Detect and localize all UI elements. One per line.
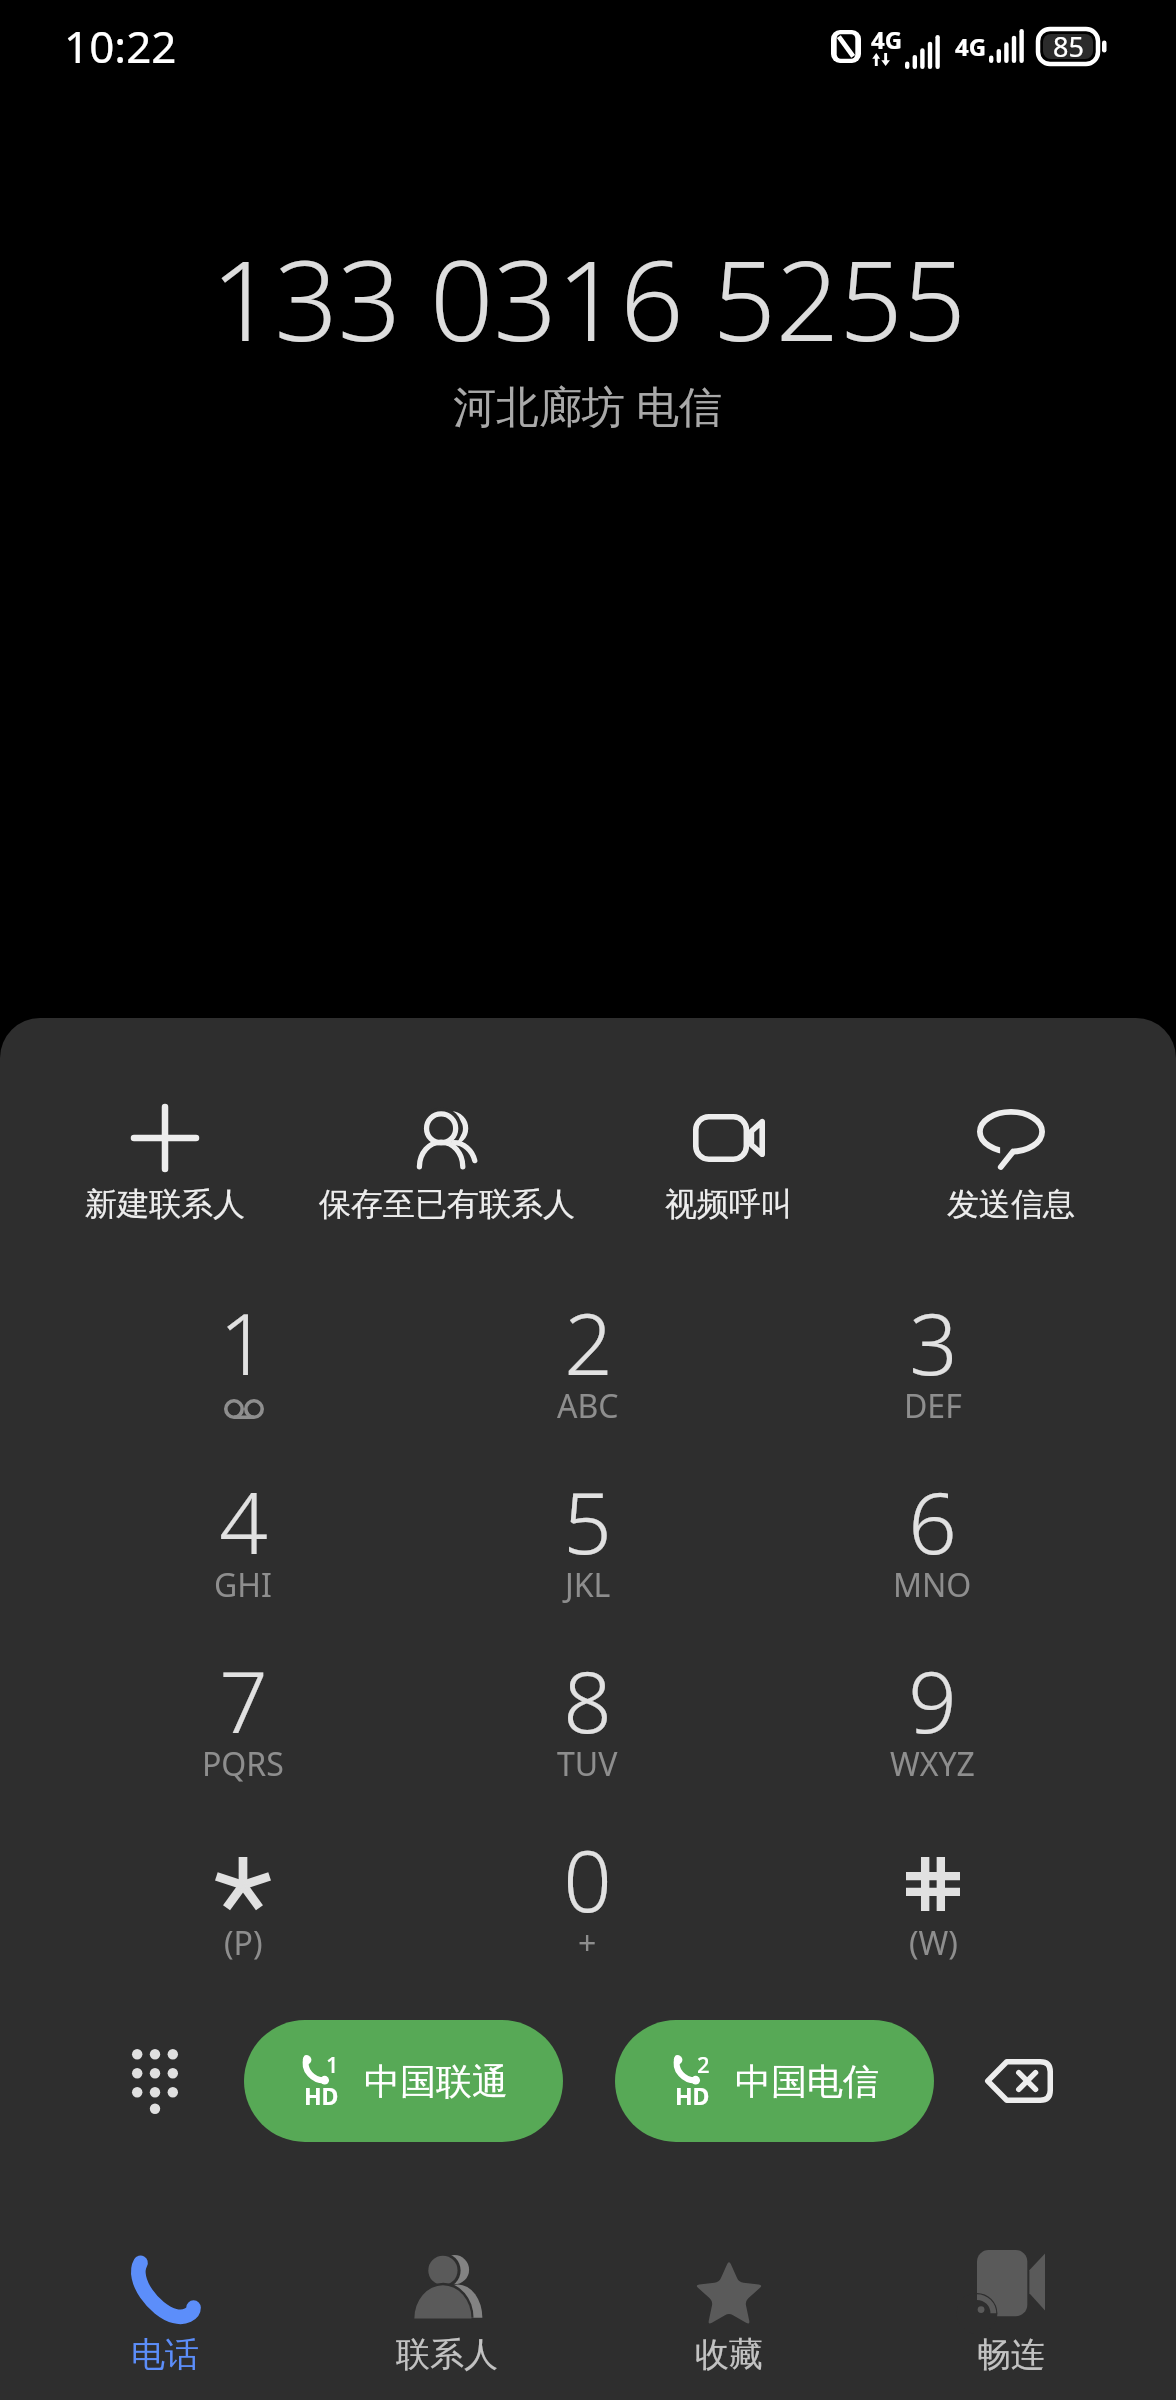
- staticText: 4G: [871, 23, 903, 56]
- staticText: 保存至已有联系人: [319, 1184, 575, 1224]
- button[interactable]: 新建联系人: [24, 1098, 306, 1248]
- staticText: DEF: [904, 1384, 962, 1428]
- button[interactable]: 联系人: [306, 2208, 588, 2400]
- staticText: HD: [304, 2080, 339, 2111]
- staticText: 4: [219, 1463, 268, 1579]
- staticText: 联系人: [396, 2333, 498, 2376]
- staticText: 新建联系人: [85, 1184, 245, 1224]
- button[interactable]: 5: [415, 1457, 760, 1636]
- button[interactable]: 保存至已有联系人: [306, 1098, 588, 1248]
- staticText: HD: [675, 2080, 710, 2111]
- button[interactable]: 发送信息: [870, 1098, 1152, 1248]
- button[interactable]: 2: [615, 2020, 934, 2142]
- staticText: GHI: [214, 1563, 272, 1607]
- staticText: 畅连: [977, 2333, 1045, 2376]
- button[interactable]: 7: [71, 1636, 415, 1815]
- staticText: 8: [563, 1642, 612, 1758]
- button[interactable]: (P): [71, 1815, 415, 1994]
- staticText: (W): [909, 1921, 958, 1965]
- button[interactable]: 9: [760, 1636, 1105, 1815]
- staticText: (P): [224, 1921, 263, 1965]
- staticText: PQRS: [202, 1742, 284, 1786]
- staticText: 1: [219, 1284, 268, 1400]
- button[interactable]: 3: [760, 1278, 1105, 1457]
- staticText: 中国电信: [735, 2059, 879, 2104]
- staticText: 10:22: [64, 16, 177, 76]
- staticText: 7: [219, 1642, 268, 1758]
- staticText: 6: [908, 1463, 957, 1579]
- button[interactable]: 1: [244, 2020, 563, 2142]
- staticText: 133 0316 5255: [211, 222, 966, 373]
- staticText: 2: [697, 2049, 710, 2079]
- button[interactable]: Keypad: [0, 2011, 244, 2151]
- staticText: JKL: [565, 1563, 611, 1607]
- button[interactable]: 电话: [24, 2208, 306, 2400]
- staticText: 3: [909, 1284, 958, 1400]
- staticText: 河北廊坊 电信: [453, 376, 723, 435]
- staticText: 5: [563, 1463, 612, 1579]
- staticText: 9: [908, 1642, 957, 1758]
- staticText: 4G: [955, 30, 987, 63]
- button[interactable]: Delete: [934, 2011, 1103, 2151]
- button[interactable]: 8: [415, 1636, 760, 1815]
- button[interactable]: 6: [760, 1457, 1105, 1636]
- staticText: +: [578, 1921, 597, 1965]
- staticText: 中国联通: [364, 2059, 508, 2104]
- staticText: 2: [564, 1284, 613, 1400]
- button[interactable]: 4: [71, 1457, 415, 1636]
- button[interactable]: 畅连: [870, 2208, 1152, 2400]
- button[interactable]: 2: [415, 1278, 760, 1457]
- staticText: 发送信息: [947, 1184, 1075, 1224]
- staticText: WXYZ: [890, 1742, 975, 1786]
- staticText: 电话: [131, 2333, 199, 2376]
- staticText: 0: [563, 1821, 612, 1937]
- button[interactable]: (W): [760, 1815, 1105, 1994]
- staticText: 视频呼叫: [665, 1184, 793, 1224]
- button[interactable]: 1: [71, 1278, 415, 1457]
- staticText: 1: [326, 2049, 339, 2079]
- staticText: MNO: [893, 1563, 972, 1607]
- staticText: 85: [1053, 28, 1084, 65]
- button[interactable]: 0: [415, 1815, 760, 1994]
- staticText: TUV: [557, 1742, 618, 1786]
- staticText: 收藏: [695, 2333, 763, 2376]
- staticText: ABC: [557, 1384, 619, 1428]
- button[interactable]: 收藏: [588, 2208, 870, 2400]
- button[interactable]: 视频呼叫: [588, 1098, 870, 1248]
